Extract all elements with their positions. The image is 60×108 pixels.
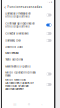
button[interactable]: Modo Movilidad Las funciones y ajustes d… [2,78,54,91]
button[interactable]: Android Auto [2,44,54,50]
button[interactable]: Continuar aplicaciones en otros disposit… [2,20,54,30]
staticText: Modo Movilidad Las funciones y ajustes d… [5,78,33,91]
staticText: ○ [28,103,30,106]
staticText: Samsung DeX [5,39,21,42]
button[interactable]: ‹ [2,4,54,10]
staticText: Modo Operación con una mano [5,71,35,77]
staticText: Movimientos y gestos [5,65,30,68]
staticText: Texto adicional [5,58,23,61]
staticText: ‹ [4,5,6,9]
staticText: Funciones avanzadas [7,5,41,9]
button[interactable]: Movimientos y gestos [2,63,54,70]
staticText: Multiventana [5,51,18,55]
button[interactable]: Multiventana [2,50,54,56]
staticText: Continuar aplicaciones en otros disposit… [5,22,34,28]
button[interactable]: Modo Operación con una mano [2,70,54,78]
staticText: Llamadas y mensajes en otros dispositivo… [5,12,30,18]
button[interactable]: Conectar a Windows [2,30,54,37]
button[interactable]: Llamadas y mensajes en otros dispositivo… [2,10,54,20]
button[interactable]: Samsung DeX [2,37,54,44]
staticText: ◌ ▴ ▮ [47,1,52,3]
staticText: Android Auto [5,45,23,49]
staticText: Conectar a Windows [5,32,28,35]
button[interactable]: Texto adicional [2,56,54,63]
